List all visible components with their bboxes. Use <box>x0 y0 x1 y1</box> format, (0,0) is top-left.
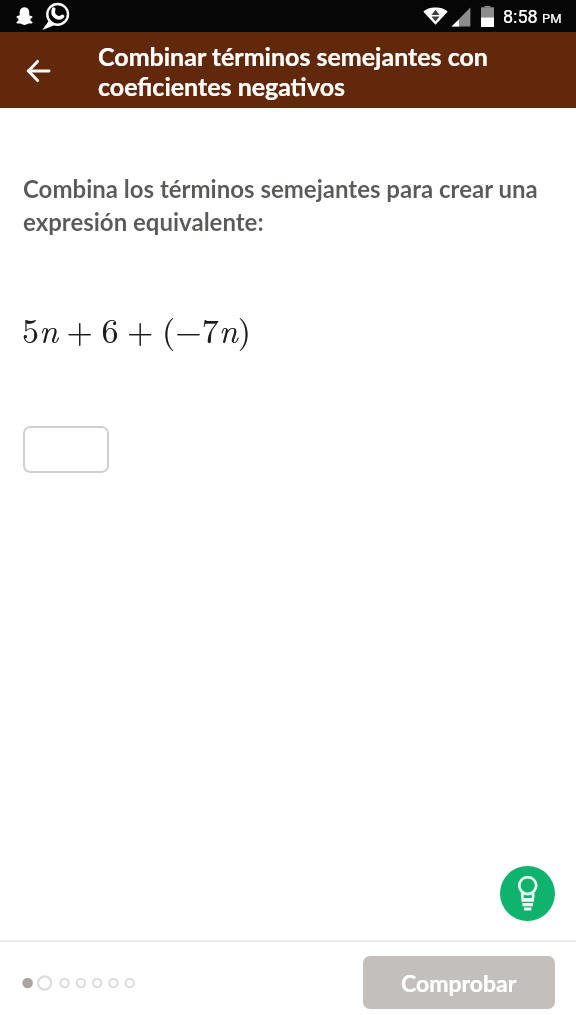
button[interactable]: Answer input <box>23 426 109 473</box>
staticText: 5n + 6 + (−7n) <box>22 305 252 353</box>
button[interactable]: Hint <box>500 866 555 921</box>
staticText: Combinar términos semejantes con coefici… <box>98 41 528 101</box>
staticText: 8:58 <box>503 6 538 27</box>
staticText: Combina los términos semejantes para cre… <box>23 174 558 236</box>
staticText: PM <box>542 11 562 26</box>
staticText: Comprobar <box>401 969 517 997</box>
staticText: 5n + 6 + (−7n) <box>22 305 252 353</box>
button[interactable]: Comprobar <box>363 956 555 1009</box>
button[interactable]: Back <box>0 32 98 108</box>
